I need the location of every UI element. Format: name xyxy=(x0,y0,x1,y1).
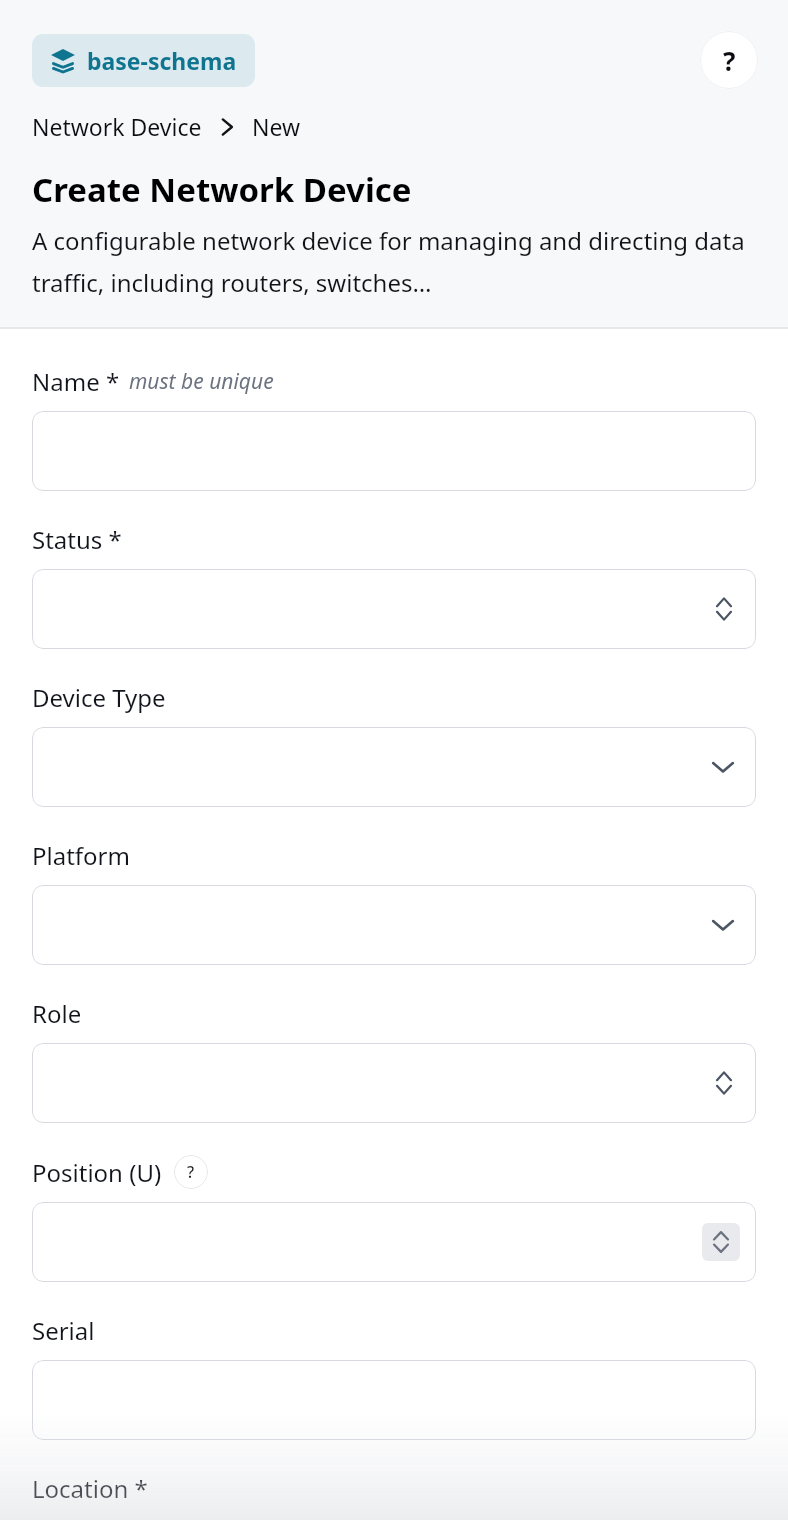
button[interactable] xyxy=(32,727,756,807)
staticText: Platform xyxy=(32,839,130,872)
staticText: base-schema xyxy=(87,45,237,76)
staticText: Create Network Device xyxy=(32,167,412,212)
button[interactable]: Increment or decrement position xyxy=(702,1223,740,1261)
button[interactable] xyxy=(32,1043,756,1123)
button[interactable]: Help about Position (U) xyxy=(174,1155,208,1189)
button[interactable] xyxy=(32,885,756,965)
staticText: Position (U) xyxy=(32,1156,162,1189)
staticText: ? xyxy=(723,43,736,78)
staticText: Status * xyxy=(32,523,122,556)
staticText: Name * xyxy=(32,365,120,398)
staticText: ? xyxy=(187,1161,195,1183)
button[interactable]: Increment or decrement position xyxy=(32,1202,756,1282)
button[interactable]: base-schema xyxy=(32,34,255,87)
button[interactable] xyxy=(32,569,756,649)
button[interactable]: Help xyxy=(700,31,758,89)
staticText: New xyxy=(252,111,301,142)
button[interactable] xyxy=(32,411,756,491)
staticText: Location * xyxy=(32,1472,148,1505)
button[interactable]: Network Device xyxy=(32,111,202,142)
staticText: A configurable network device for managi… xyxy=(32,224,746,299)
staticText: Role xyxy=(32,997,82,1030)
staticText: Network Device xyxy=(32,111,202,142)
staticText: Serial xyxy=(32,1314,95,1347)
staticText: Device Type xyxy=(32,681,166,714)
staticText: must be unique xyxy=(129,367,274,396)
button[interactable] xyxy=(32,1360,756,1440)
